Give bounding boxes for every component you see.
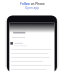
button[interactable]: Follow on Phone [0,0,64,72]
staticText: Follow on Phone [20,2,45,6]
staticText: Open app [25,6,39,10]
